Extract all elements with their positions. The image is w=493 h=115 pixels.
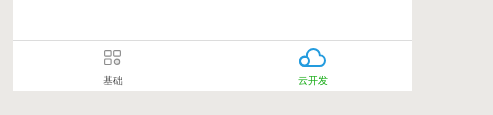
button[interactable]: 云开发: [213, 41, 412, 91]
staticText: 云开发: [298, 74, 328, 87]
button[interactable]: 基础: [13, 41, 213, 91]
staticText: 基础: [103, 74, 123, 87]
